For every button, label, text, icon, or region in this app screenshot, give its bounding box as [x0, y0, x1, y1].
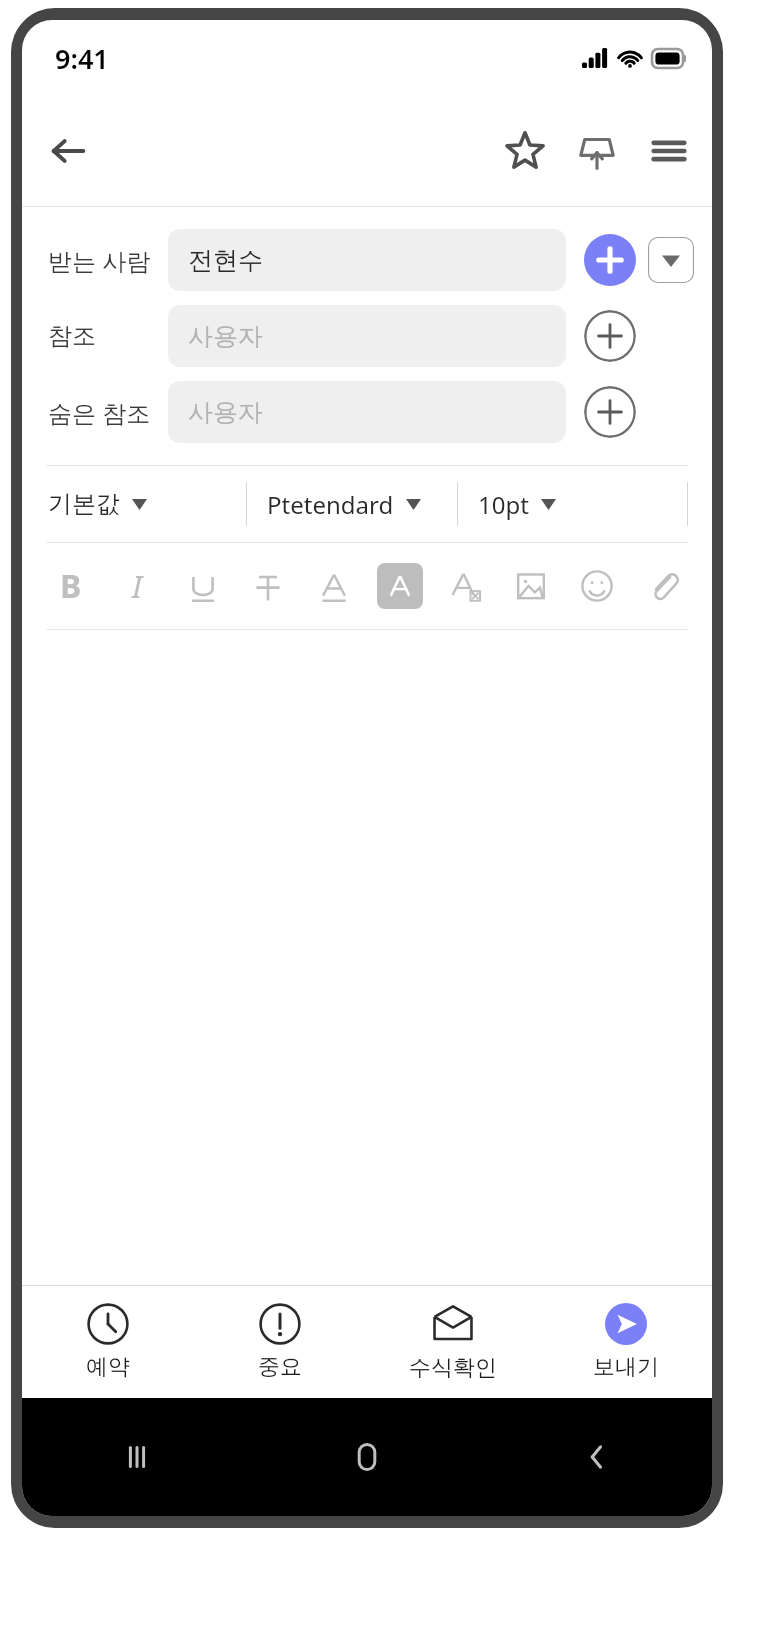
button[interactable]: 보내기: [539, 1286, 712, 1398]
staticText: 예약: [86, 1353, 130, 1381]
button[interactable]: 전현수: [168, 229, 566, 291]
button[interactable]: 예약: [22, 1286, 194, 1398]
button[interactable]: Text color: [311, 563, 357, 609]
staticText: 수식확인: [409, 1354, 497, 1382]
button[interactable]: Bold: [48, 563, 94, 609]
staticText: 받는 사람: [48, 244, 168, 277]
button[interactable]: Back: [40, 123, 96, 179]
button[interactable]: Outbox: [568, 122, 626, 180]
button[interactable]: 사용자: [168, 381, 566, 443]
staticText: 중요: [258, 1353, 302, 1381]
button[interactable]: Home: [252, 1398, 482, 1516]
button[interactable]: Strikethrough: [245, 563, 291, 609]
button[interactable]: Attach file: [640, 563, 686, 609]
staticText: 10pt: [478, 488, 529, 521]
button[interactable]: Add 숨은 참조: [584, 386, 636, 438]
staticText: 전현수: [188, 245, 263, 276]
button[interactable]: Emoji: [574, 563, 620, 609]
button[interactable]: Underline: [180, 563, 226, 609]
button[interactable]: Recents: [22, 1398, 252, 1516]
staticText: 사용자: [188, 397, 263, 428]
staticText: 사용자: [188, 321, 263, 352]
button[interactable]: Star: [496, 122, 554, 180]
button[interactable]: Back: [482, 1398, 712, 1516]
button[interactable]: Add 참조: [584, 310, 636, 362]
button[interactable]: 기본값: [48, 466, 246, 542]
staticText: 숨은 참조: [48, 396, 168, 429]
staticText: B: [60, 564, 82, 608]
button[interactable]: 중요: [194, 1286, 366, 1398]
staticText: 9:41: [55, 40, 109, 77]
button[interactable]: 10pt: [478, 466, 687, 542]
staticText: 보내기: [593, 1353, 659, 1381]
staticText: I: [132, 565, 143, 607]
button[interactable]: Add recipient: [584, 234, 636, 286]
button[interactable]: 사용자: [168, 305, 566, 367]
staticText: Ptetendard: [267, 488, 394, 521]
button[interactable]: Insert image: [508, 563, 554, 609]
staticText: 참조: [48, 321, 168, 351]
button[interactable]: Italic: [114, 563, 160, 609]
button[interactable]: 수식확인: [366, 1286, 539, 1398]
button[interactable]: Clear formatting: [443, 563, 489, 609]
staticText: 기본값: [48, 489, 120, 519]
button[interactable]: Ptetendard: [267, 466, 457, 542]
button[interactable]: Expand: [648, 237, 694, 283]
button[interactable]: Highlight: [377, 563, 423, 609]
button[interactable]: Menu: [640, 122, 698, 180]
